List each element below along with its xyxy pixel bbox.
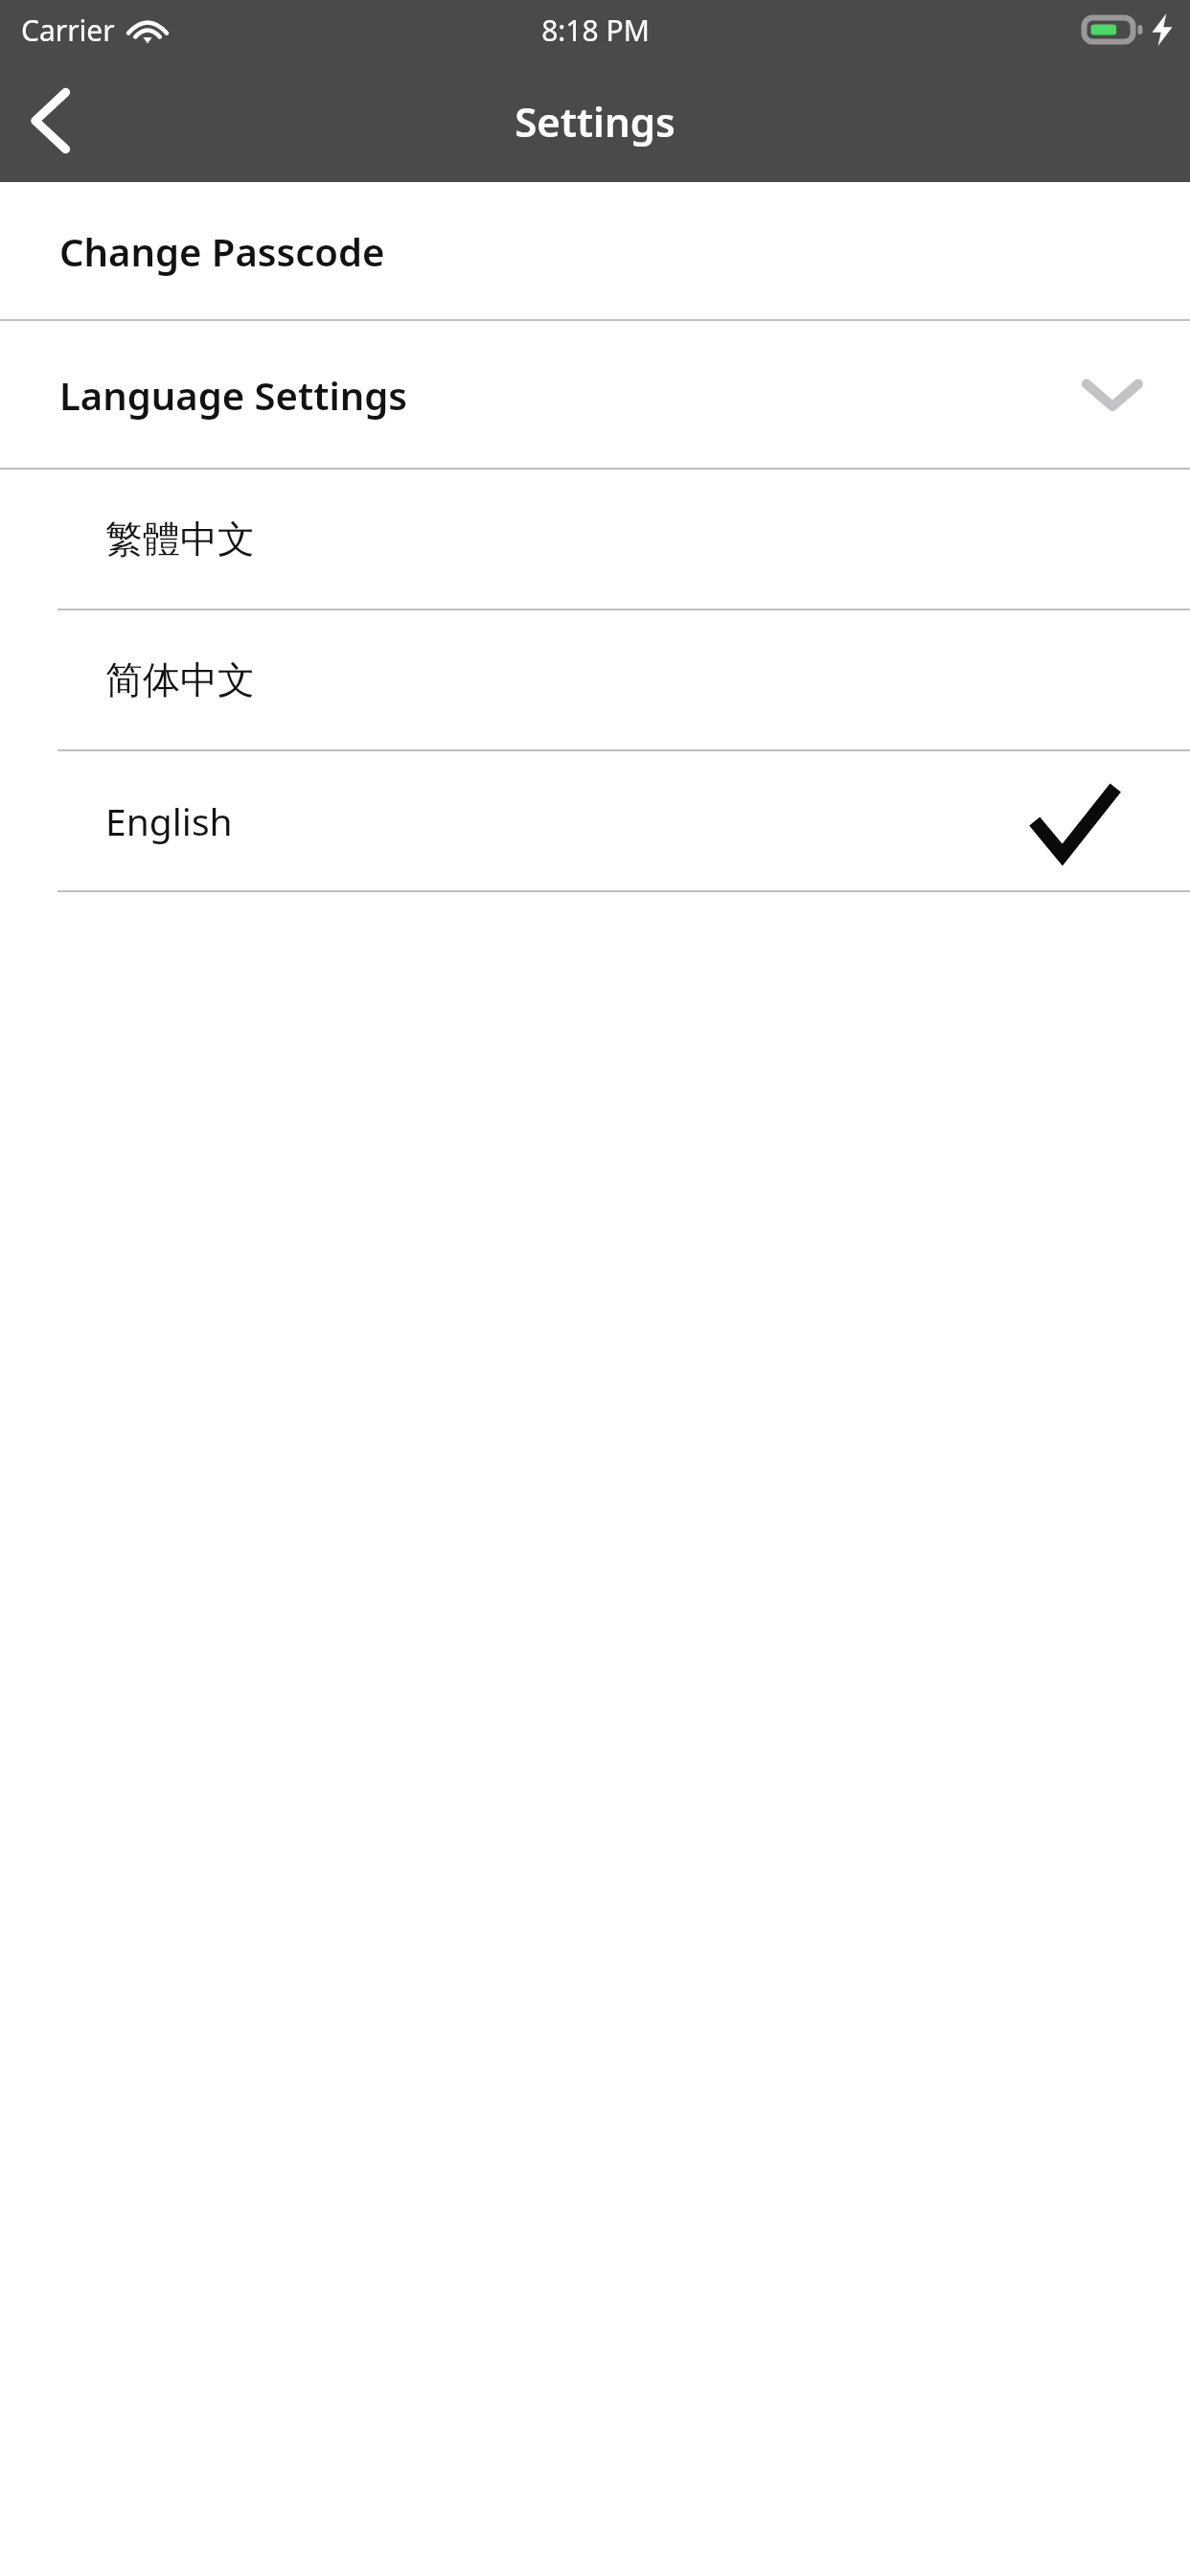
- staticText: 8:18 PM: [541, 11, 650, 50]
- staticText: Carrier: [21, 11, 115, 50]
- staticText: 简体中文: [105, 656, 255, 703]
- button[interactable]: Change Passcode: [0, 182, 1190, 319]
- button[interactable]: English: [0, 751, 1190, 890]
- button[interactable]: Language Settings: [0, 321, 1190, 468]
- staticText: Language Settings: [59, 369, 408, 421]
- button[interactable]: Back: [0, 65, 100, 176]
- staticText: English: [105, 795, 233, 846]
- staticText: 繁體中文: [105, 516, 255, 563]
- staticText: Change Passcode: [59, 225, 385, 277]
- staticText: Settings: [515, 94, 675, 149]
- button[interactable]: 繁體中文: [0, 470, 1190, 609]
- button[interactable]: 简体中文: [0, 610, 1190, 749]
